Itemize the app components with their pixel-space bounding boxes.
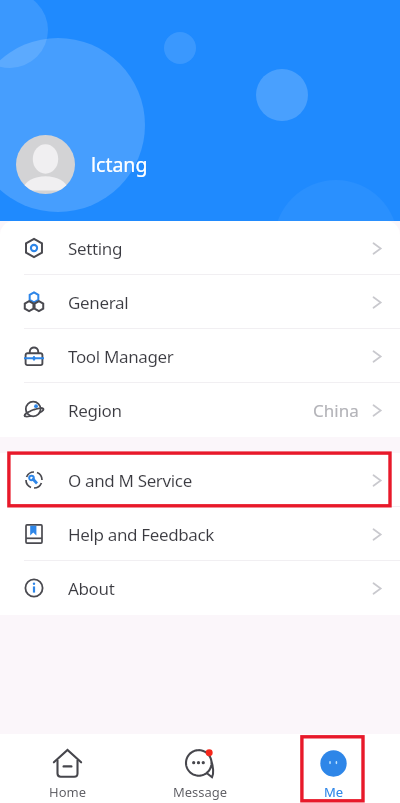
staticText: Message (173, 783, 228, 801)
staticText: Help and Feedback (68, 523, 215, 546)
staticText: Setting (68, 237, 123, 260)
button[interactable]: Message (134, 734, 267, 803)
staticText: About (68, 577, 115, 600)
button[interactable]: About (0, 561, 400, 615)
staticText: Tool Manager (68, 345, 174, 368)
button[interactable]: Help and Feedback (0, 507, 400, 561)
staticText: Me (324, 783, 344, 801)
staticText: China (313, 399, 359, 422)
button[interactable]: Me (267, 734, 400, 803)
staticText: Region (68, 399, 122, 422)
staticText: Home (49, 783, 86, 801)
staticText: General (68, 291, 129, 314)
button[interactable]: Home (0, 734, 134, 803)
button[interactable]: Tool Manager (0, 329, 400, 383)
staticText: lctang (91, 151, 148, 178)
button[interactable]: Setting (0, 221, 400, 275)
button[interactable]: Region (0, 383, 400, 437)
staticText: O and M Service (68, 469, 192, 492)
button[interactable]: General (0, 275, 400, 329)
button[interactable]: O and M Service (0, 453, 400, 507)
